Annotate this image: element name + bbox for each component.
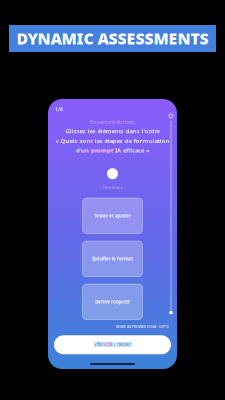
staticText: « Quels sont les étapes de formulation [55,137,169,145]
staticText: Tester et ajuster [94,213,131,219]
staticText: REMIS AU PREMIER ESSAI · 63PTS [116,325,169,329]
staticText: Spécifier le format [92,256,133,262]
button[interactable]: Définir l'objectif [82,284,142,320]
staticText: d'un prompt IA efficace » [76,146,149,154]
button[interactable]: Favourite [168,113,174,119]
staticText: VÉRIFIER L'ORDRE [94,342,131,348]
button[interactable]: VÉRIFIER L'ORDRE [54,335,171,354]
button[interactable]: Spécifier le format [82,241,142,277]
button[interactable]: Tester et ajuster [82,198,142,234]
staticText: Définir l'objectif [95,299,130,305]
staticText: DYNAMIC ASSESSMENTS [16,28,208,49]
staticText: - 1ère étape - [100,184,124,190]
staticText: 1/8 [55,106,63,112]
staticText: Glissez les éléments dans l'ordre [65,127,159,135]
staticText: En partant du haut, [90,118,135,125]
